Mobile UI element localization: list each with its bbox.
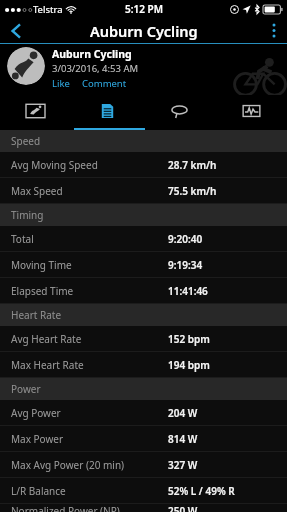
button[interactable]: Avg Heart Rate [0,326,287,352]
staticText: 11:41:46 [168,284,208,298]
staticText: 152 bpm [168,332,210,346]
button[interactable]: Avg Moving Speed [0,152,287,178]
staticText: Like [52,77,70,90]
staticText: Max Power [11,432,64,446]
staticText: Moving Time [11,258,72,272]
staticText: 5:12 PM [125,2,163,16]
staticText: Heart Rate [11,308,62,322]
staticText: Max Speed [11,184,63,198]
staticText: 9:20:40 [168,232,203,246]
staticText: Normalized Power (NP) [11,504,120,512]
button[interactable]: Map [0,95,71,130]
button[interactable]: Max Heart Rate [0,352,287,378]
staticText: 75.5 km/h [168,184,217,198]
button[interactable]: Elapsed Time [0,278,287,304]
button[interactable]: Total [0,226,287,252]
button[interactable]: Charts [215,95,287,130]
staticText: Auburn Cycling [90,21,198,41]
staticText: Auburn Cycling [52,47,132,61]
staticText: Comment [82,77,127,90]
staticText: L/R Balance [11,484,66,498]
button[interactable]: Comment [82,77,127,90]
button[interactable]: Back [0,18,32,43]
button[interactable]: More options [261,18,287,43]
button[interactable]: Max Avg Power (20 min) [0,452,287,478]
staticText: 3/03/2016, 4:53 AM [52,62,139,75]
button[interactable]: Max Speed [0,178,287,204]
staticText: Max Avg Power (20 min) [11,458,125,472]
staticText: 814 W [168,432,198,446]
staticText: 194 bpm [168,358,210,372]
staticText: 52% L / 49% R [168,484,235,498]
button[interactable]: Avg Power [0,400,287,426]
staticText: Speed [11,134,41,148]
staticText: Telstra [33,3,63,16]
staticText: Timing [11,208,44,222]
button[interactable]: Laps [143,95,215,130]
button[interactable]: Max Power [0,426,287,452]
staticText: Power [11,382,41,396]
button[interactable]: Summary [71,95,143,130]
staticText: 204 W [168,406,198,420]
button[interactable]: L/R Balance [0,478,287,504]
button[interactable]: Like [52,77,70,90]
staticText: Elapsed Time [11,284,74,298]
button[interactable]: Normalized Power (NP) [0,504,287,512]
staticText: 250 W [168,504,198,512]
staticText: Avg Heart Rate [11,332,82,346]
staticText: 28.7 km/h [168,158,217,172]
staticText: Max Heart Rate [11,358,84,372]
staticText: 327 W [168,458,198,472]
button[interactable]: Moving Time [0,252,287,278]
staticText: 9:19:34 [168,258,203,272]
staticText: Avg Power [11,406,61,420]
staticText: Avg Moving Speed [11,158,98,172]
staticText: Total [11,232,34,246]
